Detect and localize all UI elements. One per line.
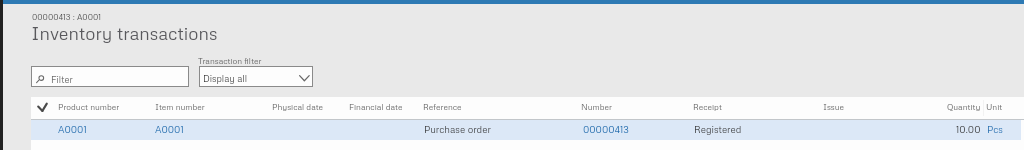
button[interactable]: Select all rows: [31, 97, 1024, 119]
staticText: Receipt: [693, 102, 722, 112]
button[interactable]: Filter: [31, 66, 189, 87]
staticText: Pcs: [987, 123, 1003, 135]
button[interactable]: A0001: [31, 120, 1021, 140]
other: Select all rows: [38, 103, 50, 115]
staticText: 00000413 : A0001: [32, 12, 101, 22]
staticText: Item number: [155, 102, 205, 112]
staticText: 00000413: [583, 123, 629, 135]
staticText: Purchase order: [424, 123, 491, 135]
staticText: 10.00: [956, 123, 981, 135]
staticText: Number: [581, 102, 613, 112]
staticText: Inventory transactions: [31, 22, 218, 44]
staticText: Physical date: [272, 102, 324, 112]
staticText: A0001: [58, 123, 87, 135]
staticText: Financial date: [349, 102, 403, 112]
staticText: A0001: [155, 123, 184, 135]
staticText: Display all: [203, 73, 247, 84]
staticText: Reference: [423, 102, 462, 112]
button[interactable]: Transaction filter: Display all: [199, 66, 313, 87]
staticText: Registered: [694, 123, 742, 135]
staticText: Unit: [986, 102, 1003, 112]
staticText: Filter: [51, 74, 73, 85]
staticText: Issue: [823, 102, 845, 112]
staticText: Product number: [58, 102, 120, 112]
staticText: Quantity: [947, 102, 981, 112]
staticText: Transaction filter: [198, 56, 262, 66]
